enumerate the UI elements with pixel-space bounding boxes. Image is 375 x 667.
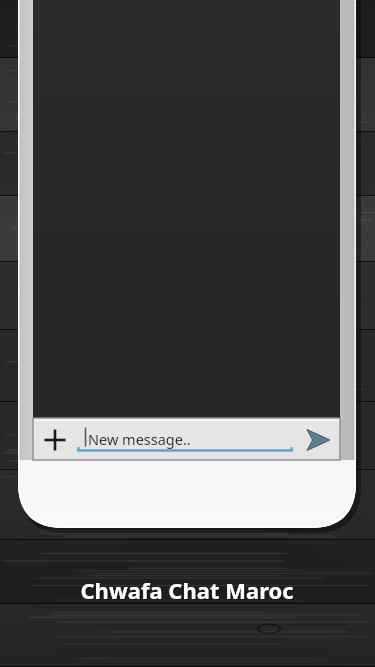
button[interactable]: Add attachment — [36, 420, 76, 458]
button[interactable] — [33, 0, 340, 418]
button[interactable]: Send message — [298, 420, 338, 458]
button[interactable] — [76, 420, 294, 458]
